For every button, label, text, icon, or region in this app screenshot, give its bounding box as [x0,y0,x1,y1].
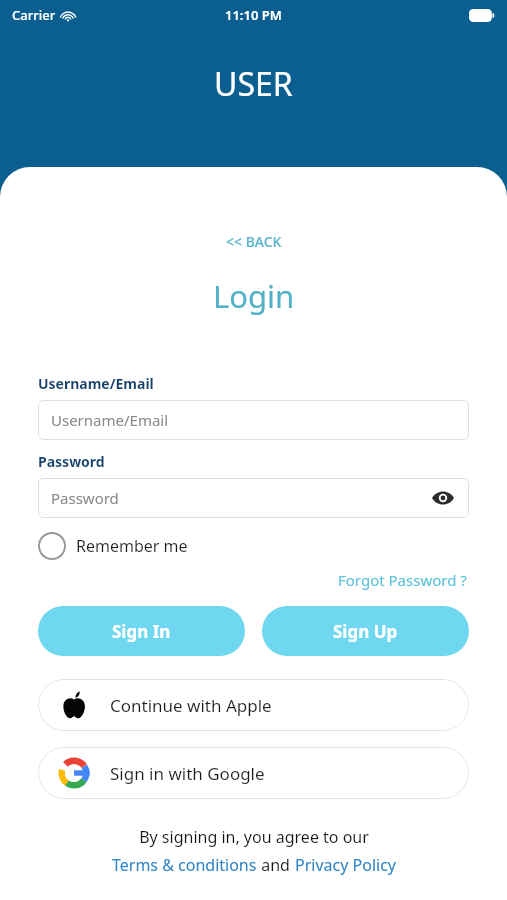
button[interactable]: Privacy Policy [295,854,396,876]
staticText: 11:10 PM [225,6,282,24]
staticText: and [257,854,295,876]
button[interactable]: Password [38,478,469,518]
button[interactable]: Show password [431,486,455,510]
button[interactable]: Sign in with Google [38,747,469,799]
staticText: Sign Up [333,620,398,643]
staticText: Terms & conditions [112,854,257,876]
button[interactable]: Remember me [38,532,188,560]
staticText: Privacy Policy [295,854,396,876]
staticText: By signing in, you agree to our [139,826,369,848]
staticText: Continue with Apple [110,694,272,717]
button[interactable]: Username/Email [38,400,469,440]
staticText: Sign in with Google [110,762,265,785]
staticText: Remember me [76,535,188,557]
staticText: Username/Email [51,410,169,430]
button[interactable]: Forgot Password ? [336,568,469,592]
staticText: USER [214,62,293,106]
button[interactable]: Sign In [38,606,245,656]
staticText: << BACK [226,232,282,251]
button[interactable]: << BACK [216,229,292,254]
staticText: Forgot Password ? [338,570,467,590]
staticText: Sign In [112,620,171,643]
staticText: Login [213,275,295,317]
button[interactable]: Continue with Apple [38,679,469,731]
staticText: Password [51,488,119,508]
staticText: Username/Email [38,374,154,393]
button[interactable]: Terms & conditions [112,854,257,876]
button[interactable]: Sign Up [262,606,469,656]
staticText: Password [38,452,105,471]
staticText: Carrier [12,6,56,24]
